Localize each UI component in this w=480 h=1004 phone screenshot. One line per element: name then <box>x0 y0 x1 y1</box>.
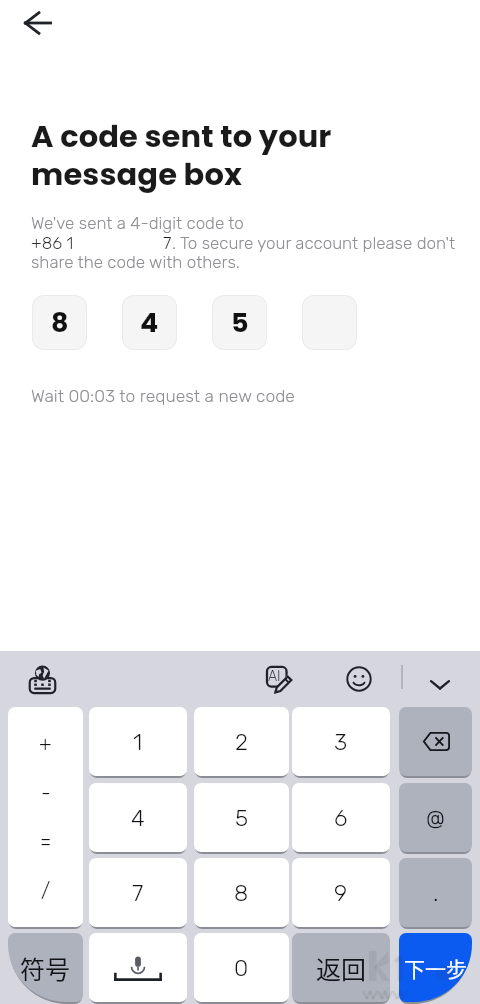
staticText: 8 <box>51 304 69 342</box>
staticText: 5 <box>235 804 249 831</box>
button[interactable]: At sign <box>399 783 472 852</box>
staticText: 0 <box>234 954 249 981</box>
staticText: 4 <box>131 804 145 831</box>
button[interactable]: 4 <box>123 296 176 349</box>
staticText: 3 <box>334 728 348 755</box>
staticText: AI <box>268 668 281 685</box>
staticText: - <box>41 781 51 805</box>
staticText: 7 <box>132 879 144 906</box>
staticText: 9 <box>334 879 348 906</box>
button[interactable]: 符号 <box>8 933 83 1002</box>
button[interactable]: 8 <box>33 296 86 349</box>
button[interactable]: Period <box>399 858 472 927</box>
button[interactable]: 5 <box>213 296 266 349</box>
button[interactable]: 下一步 <box>399 933 472 1002</box>
button[interactable]: + <box>8 707 83 927</box>
staticText: / <box>41 878 51 902</box>
button[interactable]: 3 <box>292 707 390 776</box>
button[interactable]: 返回 <box>292 933 390 1002</box>
button[interactable]: Back <box>14 0 62 47</box>
button[interactable]: Voice input <box>89 933 187 1002</box>
button[interactable]: 8 <box>194 858 289 927</box>
button[interactable]: 1 <box>89 707 187 776</box>
staticText: +86 1 <box>31 233 74 253</box>
staticText: 返回 <box>316 950 367 986</box>
button[interactable]: 7 <box>89 858 187 927</box>
staticText: 符号 <box>20 950 71 986</box>
button[interactable]: 0 <box>194 933 289 1002</box>
staticText: 6 <box>334 804 348 831</box>
staticText: 下一步 <box>404 953 467 983</box>
staticText: . To secure your account please don't <box>172 233 456 253</box>
staticText: 8 <box>234 879 249 906</box>
staticText: share the code with others. <box>31 252 240 272</box>
staticText: + <box>39 732 52 756</box>
button[interactable]: 6 <box>292 783 390 852</box>
staticText: Wait 00:03 to request a new code <box>31 386 295 407</box>
button[interactable]: 4 <box>89 783 187 852</box>
button[interactable]: 2 <box>194 707 289 776</box>
staticText: 2 <box>235 728 248 755</box>
button[interactable]: Hide keyboard <box>416 660 464 708</box>
staticText: @ <box>426 804 445 831</box>
staticText: 1 <box>133 728 143 755</box>
staticText: We've sent a 4-digit code to <box>31 213 244 233</box>
button[interactable]: Switch input language <box>22 659 62 699</box>
button[interactable]: 9 <box>292 858 390 927</box>
button[interactable]: AI writing assistant <box>260 660 298 698</box>
button[interactable]: Emoji <box>340 660 378 698</box>
staticText: . <box>433 879 439 906</box>
staticText: = <box>40 829 52 853</box>
button[interactable]: 5 <box>194 783 289 852</box>
staticText: 7 <box>163 233 172 253</box>
staticText: A code sent to your message box <box>31 115 332 196</box>
button[interactable]: Backspace <box>399 707 472 776</box>
staticText: 5 <box>231 304 249 342</box>
staticText: 4 <box>140 304 159 342</box>
